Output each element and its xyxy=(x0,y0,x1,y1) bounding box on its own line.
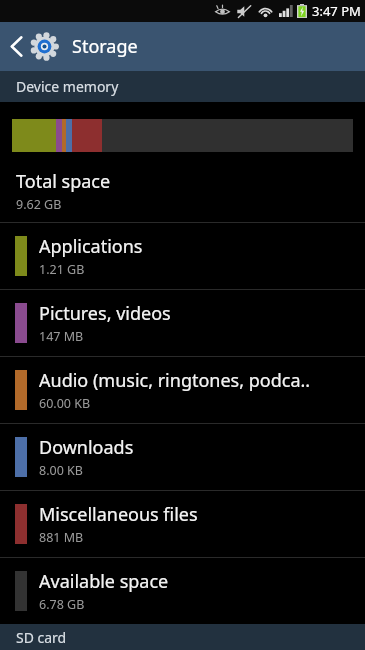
staticText: Storage xyxy=(72,34,138,59)
staticText: 147 MB xyxy=(39,328,84,345)
button[interactable]: Pictures, videos xyxy=(0,290,365,356)
button[interactable]: Miscellaneous files xyxy=(0,491,365,557)
staticText: 8.00 KB xyxy=(39,462,83,479)
staticText: Total space xyxy=(16,169,111,194)
staticText: 1.21 GB xyxy=(39,261,85,278)
staticText: SD card xyxy=(16,628,67,647)
staticText: 9.62 GB xyxy=(16,196,62,213)
button[interactable]: Available space xyxy=(0,558,365,624)
button[interactable]: Downloads xyxy=(0,424,365,490)
staticText: Audio (music, ringtones, podca.. xyxy=(39,368,311,393)
button[interactable]: Navigate up xyxy=(0,25,62,68)
staticText: Miscellaneous files xyxy=(39,502,198,527)
staticText: 60.00 KB xyxy=(39,395,91,412)
staticText: Downloads xyxy=(39,435,134,460)
staticText: 881 MB xyxy=(39,529,84,546)
staticText: Available space xyxy=(39,569,169,594)
button[interactable]: Audio (music, ringtones, podca.. xyxy=(0,357,365,423)
button[interactable]: Applications xyxy=(0,223,365,289)
staticText: Device memory xyxy=(16,77,119,96)
staticText: Applications xyxy=(39,234,143,259)
staticText: 3:47 PM xyxy=(312,2,361,20)
staticText: 6.78 GB xyxy=(39,596,85,613)
staticText: Pictures, videos xyxy=(39,301,171,326)
button[interactable]: Total space xyxy=(0,169,365,222)
